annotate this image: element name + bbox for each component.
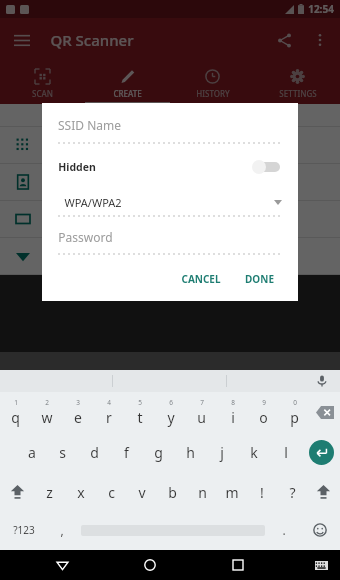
- button[interactable]: Wi-Fi: [0, 238, 340, 274]
- staticText: c: [108, 483, 115, 502]
- staticText: z: [46, 483, 53, 502]
- staticText: b: [168, 483, 177, 502]
- staticText: n: [198, 483, 207, 502]
- button[interactable]: 8: [217, 392, 248, 432]
- button[interactable]: c: [96, 472, 127, 512]
- button[interactable]: 2: [31, 392, 62, 432]
- staticText: w: [41, 408, 53, 427]
- staticText: 1: [14, 398, 18, 407]
- staticText: j: [220, 443, 224, 462]
- button[interactable]: a: [16, 432, 47, 472]
- staticText: !: [260, 483, 264, 502]
- staticText: Website Link: [50, 212, 116, 227]
- staticText: h: [186, 443, 195, 462]
- staticText: l: [284, 443, 288, 462]
- staticText: f: [124, 443, 129, 462]
- button[interactable]: s: [47, 432, 78, 472]
- button[interactable]: Website Link: [0, 201, 340, 237]
- staticText: t: [137, 408, 143, 427]
- staticText: CREATE: [113, 88, 142, 99]
- staticText: 9: [262, 398, 266, 407]
- staticText: u: [197, 408, 206, 427]
- button[interactable]: Switch keyboard: [306, 550, 336, 580]
- button[interactable]: 7: [186, 392, 217, 432]
- staticText: q: [11, 408, 20, 427]
- button[interactable]: SCAN: [0, 62, 85, 104]
- button[interactable]: Recent apps: [223, 550, 253, 580]
- button[interactable]: ?: [277, 472, 307, 512]
- staticText: a: [28, 443, 36, 462]
- staticText: 12:54: [308, 2, 334, 16]
- button[interactable]: Shift: [0, 472, 34, 512]
- button[interactable]: Back: [47, 550, 77, 580]
- staticText: QR Scanner: [50, 30, 134, 50]
- button[interactable]: Hidden: [58, 156, 282, 178]
- staticText: v: [138, 483, 146, 502]
- button[interactable]: Shift: [307, 472, 340, 512]
- staticText: SCAN: [32, 88, 53, 99]
- staticText: 7: [200, 398, 204, 407]
- button[interactable]: Contact: [0, 164, 340, 200]
- staticText: ?: [289, 483, 296, 502]
- button[interactable]: DONE: [237, 267, 282, 291]
- button[interactable]: Voice input: [314, 373, 330, 389]
- button[interactable]: Enter: [309, 440, 334, 465]
- button[interactable]: d: [78, 432, 110, 472]
- button[interactable]: 6: [155, 392, 186, 432]
- button[interactable]: HISTORY: [170, 62, 255, 104]
- button[interactable]: 0: [279, 392, 310, 432]
- staticText: y: [167, 408, 175, 427]
- button[interactable]: b: [157, 472, 187, 512]
- button[interactable]: App: [0, 127, 340, 163]
- staticText: 2: [45, 398, 49, 407]
- button[interactable]: 3: [62, 392, 93, 432]
- button[interactable]: 4: [93, 392, 124, 432]
- staticText: DONE: [245, 272, 274, 286]
- button[interactable]: Home: [135, 550, 165, 580]
- button[interactable]: ?123: [0, 512, 47, 548]
- button[interactable]: SETTINGS: [255, 62, 340, 104]
- staticText: Hidden: [58, 160, 96, 174]
- staticText: 3: [76, 398, 80, 407]
- button[interactable]: Space: [77, 512, 269, 548]
- staticText: x: [77, 483, 85, 502]
- button[interactable]: g: [142, 432, 174, 472]
- button[interactable]: h: [174, 432, 206, 472]
- button[interactable]: n: [187, 472, 217, 512]
- staticText: ,: [60, 522, 64, 538]
- staticText: ?123: [13, 523, 35, 537]
- button[interactable]: .: [269, 512, 299, 548]
- button[interactable]: Open navigation drawer: [0, 18, 44, 62]
- staticText: App: [50, 138, 71, 153]
- button[interactable]: 5: [124, 392, 155, 432]
- button[interactable]: l: [270, 432, 302, 472]
- button[interactable]: Emoji: [299, 512, 340, 548]
- staticText: g: [154, 443, 163, 462]
- button[interactable]: More options: [304, 24, 336, 56]
- button[interactable]: 1: [0, 392, 31, 432]
- staticText: Wi-Fi: [50, 249, 76, 264]
- button[interactable]: v: [127, 472, 157, 512]
- staticText: k: [250, 443, 258, 462]
- button[interactable]: z: [34, 472, 65, 512]
- button[interactable]: CREATE: [85, 62, 170, 104]
- button[interactable]: m: [217, 472, 247, 512]
- staticText: d: [90, 443, 99, 462]
- button[interactable]: Share: [264, 20, 304, 60]
- button[interactable]: 9: [248, 392, 279, 432]
- button[interactable]: Backspace: [310, 392, 340, 432]
- button[interactable]: k: [238, 432, 270, 472]
- button[interactable]: j: [206, 432, 238, 472]
- button[interactable]: WPA/WPA2: [58, 192, 282, 212]
- staticText: e: [74, 408, 82, 427]
- staticText: p: [290, 408, 299, 427]
- button[interactable]: !: [247, 472, 277, 512]
- button[interactable]: ,: [47, 512, 77, 548]
- button[interactable]: x: [65, 472, 96, 512]
- button[interactable]: f: [110, 432, 142, 472]
- staticText: 8: [231, 398, 235, 407]
- button[interactable]: CANCEL: [173, 267, 229, 291]
- staticText: s: [59, 443, 66, 462]
- staticText: Password: [58, 229, 113, 245]
